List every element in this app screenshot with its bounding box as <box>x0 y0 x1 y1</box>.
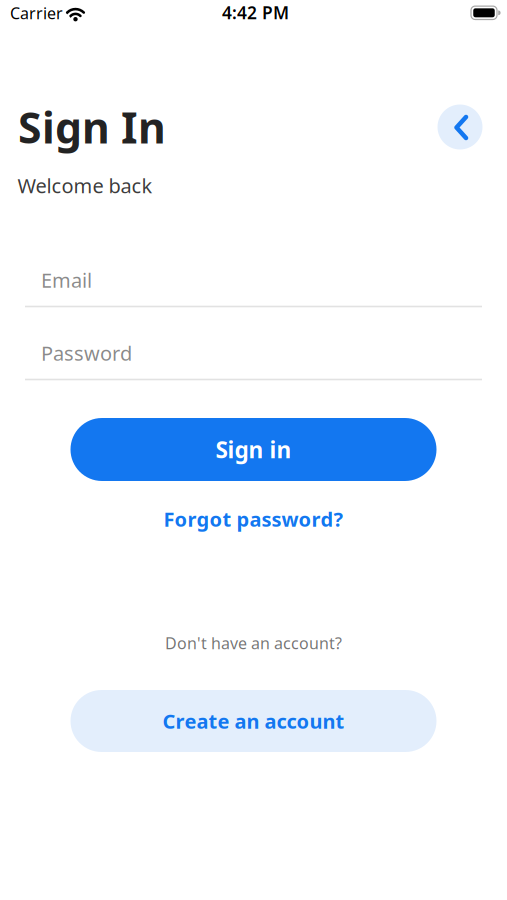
staticText: Sign in <box>215 434 291 464</box>
staticText: Welcome back <box>17 172 152 199</box>
button[interactable]: Sign in <box>70 418 436 481</box>
button[interactable]: Create an account <box>70 690 436 752</box>
button[interactable]: Email <box>25 256 482 310</box>
staticText: Don't have an account? <box>165 632 342 654</box>
staticText: Forgot password? <box>163 506 343 532</box>
button[interactable]: Back <box>437 104 482 149</box>
staticText: Password <box>41 340 132 366</box>
staticText: Email <box>41 267 92 293</box>
staticText: Carrier <box>10 2 63 24</box>
button[interactable]: Password <box>25 329 482 383</box>
staticText: 4:42 PM <box>222 1 289 24</box>
staticText: Sign In <box>18 99 166 155</box>
staticText: Create an account <box>162 708 344 734</box>
button[interactable]: Forgot password? <box>163 506 343 532</box>
